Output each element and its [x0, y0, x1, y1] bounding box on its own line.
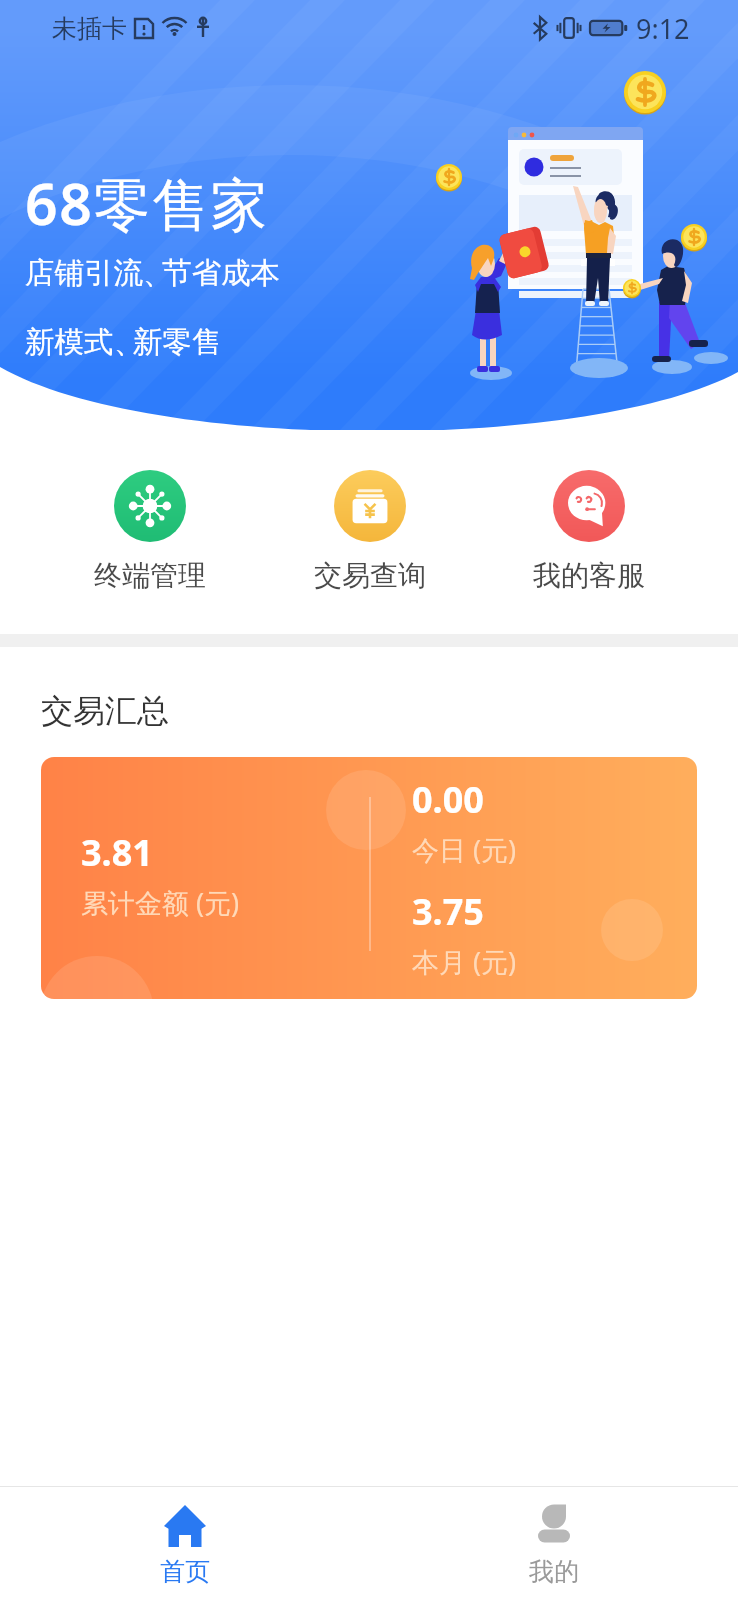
staticText: 首页: [160, 1556, 210, 1587]
staticText: 交易查询: [314, 558, 426, 593]
staticText: 未插卡: [52, 13, 127, 44]
staticText: 终端管理: [94, 558, 206, 593]
staticText: 店铺引流: [25, 255, 143, 292]
staticText: 我的客服: [533, 558, 645, 593]
staticText: 交易汇总: [41, 691, 169, 731]
staticText: 9:12: [636, 10, 690, 47]
staticText: 68零售家: [25, 164, 270, 242]
staticText: 、: [114, 324, 133, 361]
button[interactable]: Profile: [369, 1487, 738, 1600]
staticText: 3.75: [412, 887, 484, 936]
staticText: 、: [143, 255, 162, 292]
staticText: 0.00: [412, 775, 484, 824]
staticText: 新模式: [25, 324, 114, 361]
button[interactable]: 交易查询: [260, 470, 479, 593]
button[interactable]: 3.81: [41, 757, 697, 999]
staticText: 今日 (元): [412, 831, 517, 868]
other: Profile: [529, 1501, 579, 1551]
staticText: 新零售: [133, 324, 222, 361]
staticText: 本月 (元): [412, 943, 517, 980]
staticText: 3.81: [81, 828, 153, 877]
staticText: 我的: [529, 1556, 579, 1587]
staticText: 累计金额 (元): [81, 884, 240, 921]
other: Home: [160, 1501, 210, 1551]
button[interactable]: 终端管理: [40, 470, 260, 593]
staticText: 节省成本: [162, 255, 280, 292]
button[interactable]: Home: [0, 1487, 369, 1600]
button[interactable]: 我的客服: [479, 470, 698, 593]
